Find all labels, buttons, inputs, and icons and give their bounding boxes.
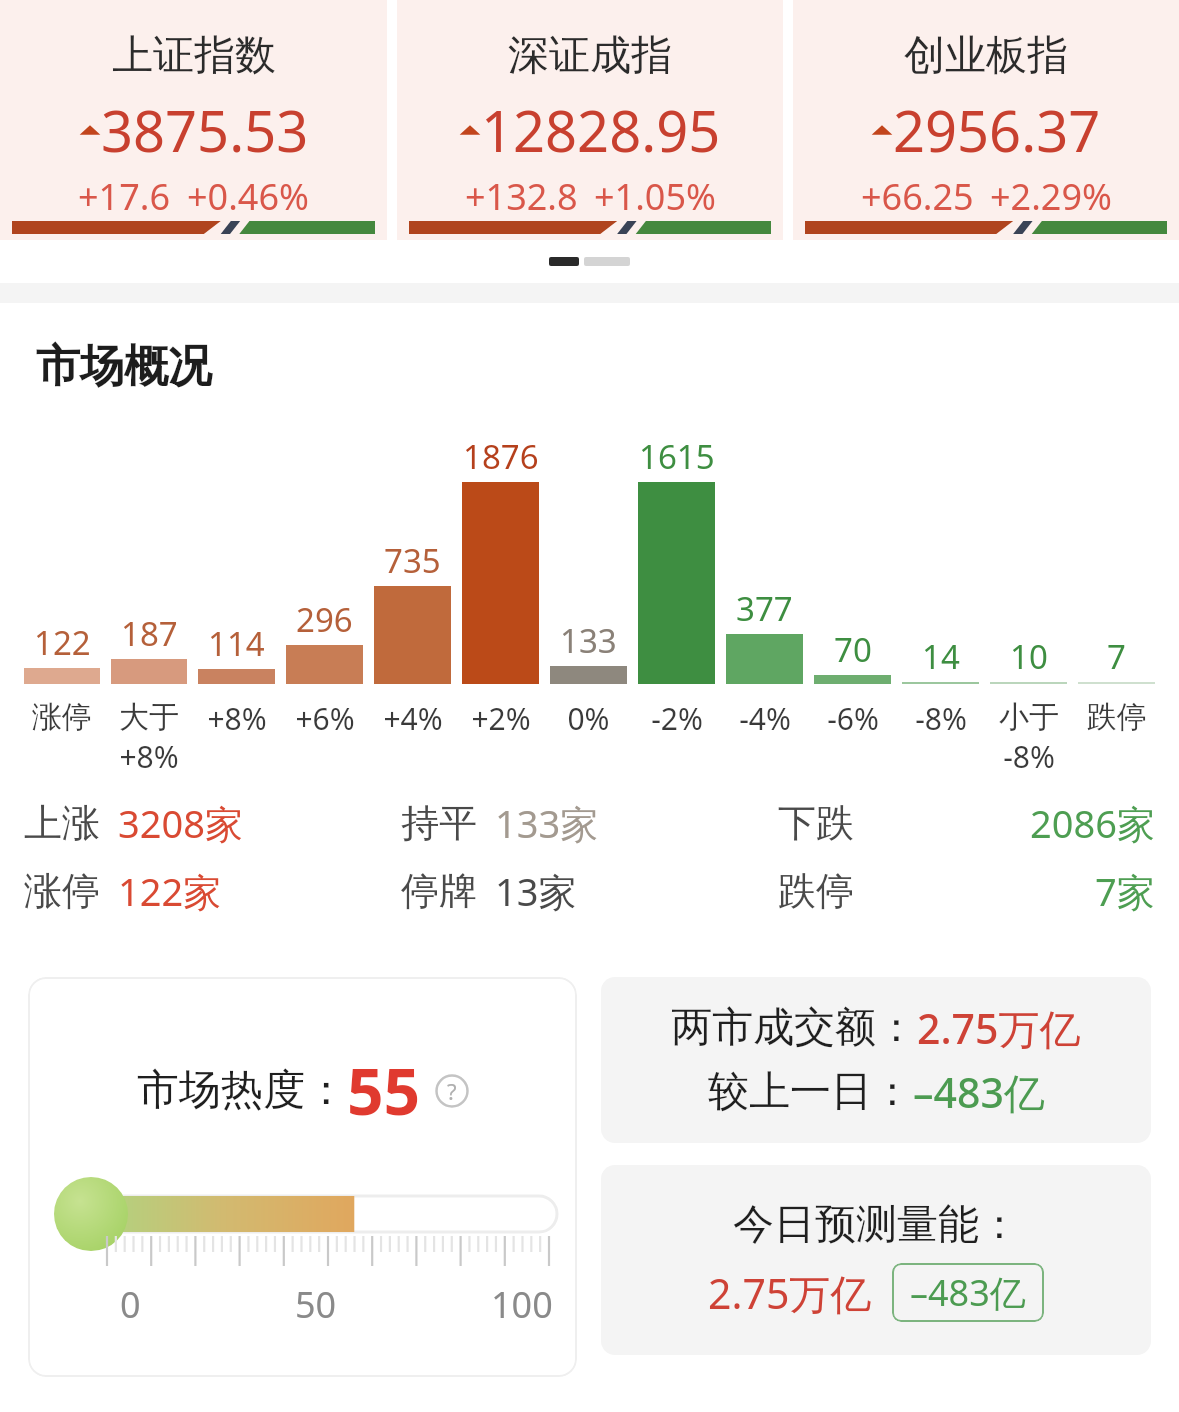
staticText: 今日预测量能： (733, 1199, 1020, 1251)
staticText: 10 (1010, 634, 1048, 679)
staticText: 114 (208, 621, 265, 666)
staticText: 3875.53 (101, 92, 309, 168)
staticText: 735 (384, 538, 441, 583)
staticText: +132.8 (465, 172, 578, 221)
staticText: 2.75万亿 (917, 1000, 1081, 1056)
staticText: 小于 (999, 698, 1059, 736)
staticText: -6% (827, 698, 879, 739)
staticText: 大于 (119, 698, 179, 736)
staticText: 100 (491, 1280, 553, 1329)
staticText: 1876 (463, 434, 539, 479)
button[interactable]: 上证指数 (0, 0, 387, 240)
staticText: 7家 (1095, 865, 1155, 917)
staticText: 2956.37 (893, 92, 1101, 168)
staticText: 下跌 (778, 799, 854, 847)
staticText: 187 (121, 611, 178, 656)
staticText: 296 (296, 597, 353, 642)
staticText: 14 (922, 634, 960, 679)
staticText: 市场概况 (36, 339, 212, 394)
staticText: 70 (834, 627, 872, 672)
button[interactable]: 深证成指 (397, 0, 783, 240)
button[interactable]: 市场热度： (28, 977, 577, 1377)
staticText: 377 (736, 586, 793, 631)
staticText: +8% (207, 698, 267, 739)
button[interactable]: 今日预测量能： (601, 1165, 1151, 1355)
staticText: 1615 (639, 434, 715, 479)
button[interactable]: 创业板指 (793, 0, 1179, 240)
staticText: 持平 (401, 799, 477, 847)
staticText: 两市成交额： (671, 1002, 917, 1054)
staticText: +1.05% (594, 172, 716, 221)
staticText: –483亿 (910, 1268, 1026, 1317)
staticText: 12828.95 (481, 92, 721, 168)
staticText: +66.25 (861, 172, 974, 221)
staticText: +6% (295, 698, 355, 739)
button[interactable]: 市场热度说明 (435, 1074, 469, 1108)
staticText: +17.6 (78, 172, 171, 221)
staticText: 2086家 (1030, 797, 1155, 849)
staticText: -8% (1003, 736, 1055, 777)
staticText: -2% (651, 698, 703, 739)
staticText: 较上一日： (708, 1066, 913, 1118)
staticText: 跌停 (778, 867, 854, 915)
staticText: 深证成指 (508, 30, 672, 82)
staticText: ? (447, 1076, 457, 1106)
staticText: 55 (347, 1047, 421, 1134)
staticText: 0% (567, 698, 610, 739)
staticText: -4% (739, 698, 791, 739)
staticText: 133 (560, 618, 617, 663)
staticText: +4% (383, 698, 443, 739)
staticText: 122家 (118, 865, 222, 917)
staticText: +8% (119, 736, 179, 777)
staticText: 3208家 (118, 797, 243, 849)
staticText: 涨停 (24, 867, 100, 915)
staticText: 7 (1107, 634, 1126, 679)
staticText: -8% (915, 698, 967, 739)
staticText: +0.46% (187, 172, 309, 221)
staticText: 133家 (495, 797, 599, 849)
staticText: +2.29% (990, 172, 1112, 221)
staticText: 2.75万亿 (708, 1265, 872, 1321)
staticText: +2% (471, 698, 531, 739)
staticText: 13家 (495, 865, 577, 917)
staticText: 上涨 (24, 799, 100, 847)
staticText: 122 (34, 620, 91, 665)
staticText: 涨停 (32, 698, 92, 736)
staticText: –483亿 (913, 1064, 1045, 1120)
staticText: 上证指数 (112, 30, 276, 82)
staticText: 50 (295, 1280, 337, 1329)
staticText: 停牌 (401, 867, 477, 915)
staticText: 0 (120, 1280, 141, 1329)
button[interactable]: 两市成交额： (601, 977, 1151, 1143)
staticText: 市场热度： (137, 1064, 347, 1117)
staticText: 跌停 (1087, 698, 1147, 736)
staticText: 创业板指 (904, 30, 1068, 82)
